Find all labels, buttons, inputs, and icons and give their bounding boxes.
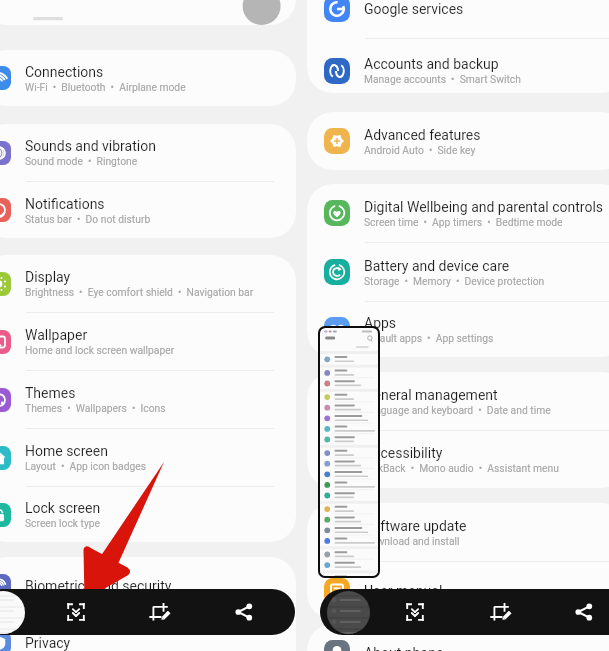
staticText: Home and lock screen wallpaper <box>25 344 175 356</box>
button[interactable]: User manual <box>307 562 609 619</box>
staticText: Status bar • Do not disturb <box>25 213 151 225</box>
button[interactable]: Screenshot preview <box>327 591 370 634</box>
staticText: Sound mode • Ringtone <box>25 155 138 167</box>
staticText: Software update <box>364 518 467 534</box>
button[interactable]: Captured screenshot preview <box>320 328 378 576</box>
staticText: Privacy <box>25 635 71 651</box>
staticText: Brightness • Eye comfort shield • Naviga… <box>25 286 254 298</box>
staticText: Display <box>25 269 71 285</box>
button[interactable]: Screenshot preview <box>0 591 25 634</box>
staticText: Language and keyboard • Date and time <box>364 404 551 416</box>
button[interactable]: Home screen <box>0 429 296 486</box>
staticText: Biometrics and security <box>25 578 172 594</box>
staticText: Sounds and vibration <box>25 138 156 154</box>
staticText: Notifications <box>25 196 105 212</box>
staticText: Android Auto • Side key <box>364 144 476 156</box>
staticText: Battery and device care <box>364 258 510 274</box>
staticText: Accessibility <box>364 445 443 461</box>
button[interactable]: Share <box>573 601 595 623</box>
staticText: Themes <box>25 385 76 401</box>
button[interactable]: Accessibility <box>307 431 609 488</box>
button[interactable]: General management <box>307 372 609 430</box>
staticText: Storage • Memory • Device protection <box>364 275 545 287</box>
staticText: Screen time • App timers • Bedtime mode <box>364 216 563 228</box>
staticText: Lock screen <box>25 500 101 516</box>
button[interactable]: Advanced features <box>307 112 609 170</box>
staticText: Connections <box>25 64 104 80</box>
button[interactable]: Crop and edit <box>149 601 171 623</box>
button[interactable]: Apps <box>307 302 609 357</box>
staticText: User manual <box>364 583 443 599</box>
button[interactable]: Share <box>233 601 255 623</box>
button[interactable]: Scroll capture <box>65 601 87 623</box>
button[interactable]: Themes <box>0 371 296 428</box>
staticText: Manage accounts • Smart Switch <box>364 73 521 85</box>
staticText: Default apps • App settings <box>364 332 494 344</box>
staticText: Wallpaper <box>25 327 88 343</box>
staticText: Advanced features <box>364 127 481 143</box>
staticText: Layout • App icon badges <box>25 460 147 472</box>
button[interactable]: Biometrics and security <box>0 557 296 614</box>
button[interactable]: Sounds and vibration <box>0 124 296 181</box>
button[interactable]: Accounts and backup <box>307 48 609 93</box>
button[interactable]: Display <box>0 255 296 312</box>
button[interactable]: Privacy <box>0 614 296 651</box>
button[interactable]: Scroll capture <box>404 601 426 623</box>
button[interactable]: Software update <box>307 503 609 561</box>
staticText: TalkBack • Mono audio • Assistant menu <box>364 462 559 474</box>
staticText: Accounts and backup <box>364 56 499 72</box>
button[interactable]: Connections <box>0 50 296 106</box>
staticText: Google services <box>364 1 464 17</box>
button[interactable]: Notifications <box>0 182 296 238</box>
button[interactable]: Crop and edit <box>490 601 512 623</box>
button[interactable]: Lock screen <box>0 487 296 542</box>
staticText: Apps <box>364 315 397 331</box>
button[interactable]: Google services <box>307 0 609 38</box>
staticText: Digital Wellbeing and parental controls <box>364 199 604 215</box>
staticText: Wi-Fi • Bluetooth • Airplane mode <box>25 81 186 93</box>
staticText: Themes • Wallpapers • Icons <box>25 402 166 414</box>
button[interactable]: Wallpaper <box>0 313 296 370</box>
staticText: General management <box>364 387 498 403</box>
button[interactable]: Battery and device care <box>307 243 609 301</box>
button[interactable]: Digital Wellbeing and parental controls <box>307 184 609 242</box>
button[interactable]: About phone <box>307 624 609 651</box>
staticText: About phone <box>364 645 444 651</box>
staticText: Home screen <box>25 443 108 459</box>
staticText: Screen lock type <box>25 517 101 529</box>
staticText: Download and install <box>364 535 460 547</box>
